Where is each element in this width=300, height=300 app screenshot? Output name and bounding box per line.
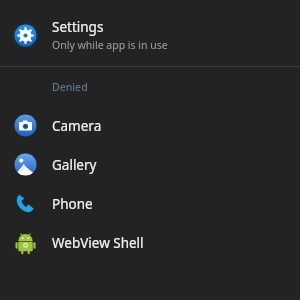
- button[interactable]: Phone: [0, 184, 300, 223]
- other: Phone: [13, 191, 38, 216]
- staticText: Gallery: [52, 156, 97, 174]
- staticText: WebView Shell: [52, 234, 144, 252]
- button[interactable]: Settings: [0, 12, 300, 58]
- button[interactable]: WebView Shell: [0, 223, 300, 262]
- staticText: Camera: [52, 117, 102, 135]
- other: Gallery: [13, 152, 38, 177]
- staticText: Phone: [52, 195, 93, 213]
- other: Settings: [13, 23, 38, 48]
- other: WebView Shell: [13, 230, 38, 255]
- button[interactable]: Camera: [0, 106, 300, 145]
- other: Camera: [13, 113, 38, 138]
- button[interactable]: Gallery: [0, 145, 300, 184]
- staticText: Settings: [52, 18, 104, 36]
- staticText: Denied: [52, 80, 88, 94]
- staticText: Only while app is in use: [52, 38, 168, 52]
